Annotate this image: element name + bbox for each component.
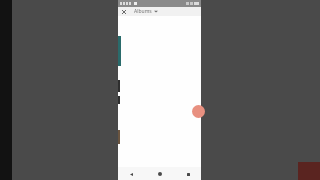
button[interactable]: Add (192, 105, 205, 118)
button[interactable]: Albums (133, 8, 159, 15)
button[interactable]: Home (155, 169, 165, 179)
staticText: Albums (134, 8, 152, 15)
button[interactable]: Recent apps (183, 169, 193, 179)
button[interactable]: Back (126, 169, 136, 179)
button[interactable]: Close (120, 8, 128, 16)
